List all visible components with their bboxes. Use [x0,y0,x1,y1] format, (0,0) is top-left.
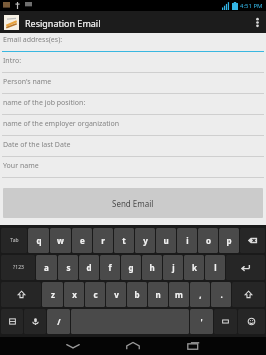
button[interactable]: n [148,282,168,307]
staticText: i [186,235,189,246]
button[interactable]: Shift [1,282,41,307]
staticText: q [36,235,42,246]
staticText: Send Email [112,198,154,209]
button[interactable]: h [142,255,162,280]
staticText: d [86,262,92,273]
button[interactable]: More options [248,11,266,33]
staticText: Intro: [3,56,22,66]
button[interactable]: t [114,228,134,253]
button[interactable]: l [205,255,225,280]
button[interactable]: k [184,255,204,280]
staticText: y [143,235,148,246]
button[interactable]: Email address(es): [0,33,266,54]
button[interactable]: q [28,228,49,253]
staticText: . [220,289,223,300]
staticText: b [134,289,140,300]
staticText: Resignation Email [25,17,101,29]
button[interactable]: m [169,282,189,307]
button[interactable]: r [93,228,113,253]
button[interactable]: c [85,282,105,307]
button[interactable]: Emoji [238,309,265,334]
button[interactable]: Voice input [24,309,46,334]
button[interactable]: Person's name [0,75,266,96]
button[interactable]: p [219,228,239,253]
staticText: , [199,289,202,300]
staticText: Tab [10,237,19,244]
button[interactable]: v [106,282,126,307]
button[interactable]: f [100,255,120,280]
button[interactable]: , [190,282,210,307]
staticText: o [206,235,211,246]
button[interactable]: i [177,228,197,253]
staticText: name of the job position: [3,98,86,108]
staticText: ?123 [13,264,24,271]
button[interactable]: Date of the last Date [0,138,266,159]
staticText: r [101,235,105,246]
staticText: e [80,235,85,246]
staticText: Person's name [3,77,52,87]
staticText: Your name [3,161,39,171]
button[interactable]: b [127,282,147,307]
button[interactable]: Hide keyboard [60,337,86,355]
staticText: j [172,262,175,273]
button[interactable]: Change keyboard [1,309,23,334]
button[interactable]: Send Email [3,188,263,218]
button[interactable]: ' [190,309,213,334]
staticText: c [93,289,98,300]
button[interactable]: d [79,255,99,280]
staticText: z [51,289,55,300]
staticText: u [163,235,169,246]
button[interactable]: Recent apps [180,337,206,355]
staticText: name of the employer organization [3,119,120,129]
staticText: g [128,262,134,273]
button[interactable]: z [42,282,63,307]
button[interactable]: g [121,255,141,280]
staticText: v [114,289,119,300]
staticText: p [226,235,232,246]
button[interactable]: w [50,228,71,253]
button[interactable]: Intro: [0,54,266,75]
staticText: x [72,289,77,300]
staticText: h [149,262,155,273]
button[interactable]: o [198,228,218,253]
staticText: l [214,262,217,273]
button[interactable]: e [72,228,92,253]
button[interactable]: name of the employer organization [0,117,266,138]
staticText: Email address(es): [3,35,63,45]
staticText: / [57,316,61,327]
staticText: f [108,262,112,273]
button[interactable]: ?123 [1,255,35,280]
button[interactable]: Enter [226,255,265,280]
button[interactable]: Backspace [240,228,265,253]
button[interactable]: u [156,228,176,253]
button[interactable]: Your name [0,159,266,180]
staticText: n [155,289,161,300]
button[interactable]: Home [120,337,146,355]
button[interactable]: Tab [1,228,27,253]
button[interactable]: a [36,255,57,280]
button[interactable]: . [211,282,231,307]
staticText: Date of the last Date [3,140,71,150]
staticText: k [192,262,197,273]
button[interactable]: Shift [232,282,265,307]
button[interactable]: name of the job position: [0,96,266,117]
button[interactable]: Settings [214,309,237,334]
staticText: ' [200,316,203,327]
button[interactable]: s [58,255,78,280]
button[interactable]: x [64,282,84,307]
staticText: w [57,235,64,246]
button[interactable]: / [47,309,70,334]
staticText: m [175,289,183,300]
button[interactable]: y [135,228,155,253]
staticText: a [44,262,49,273]
button[interactable]: j [163,255,183,280]
staticText: t [122,235,126,246]
staticText: s [66,262,71,273]
staticText: 4:51 PM [240,2,263,10]
